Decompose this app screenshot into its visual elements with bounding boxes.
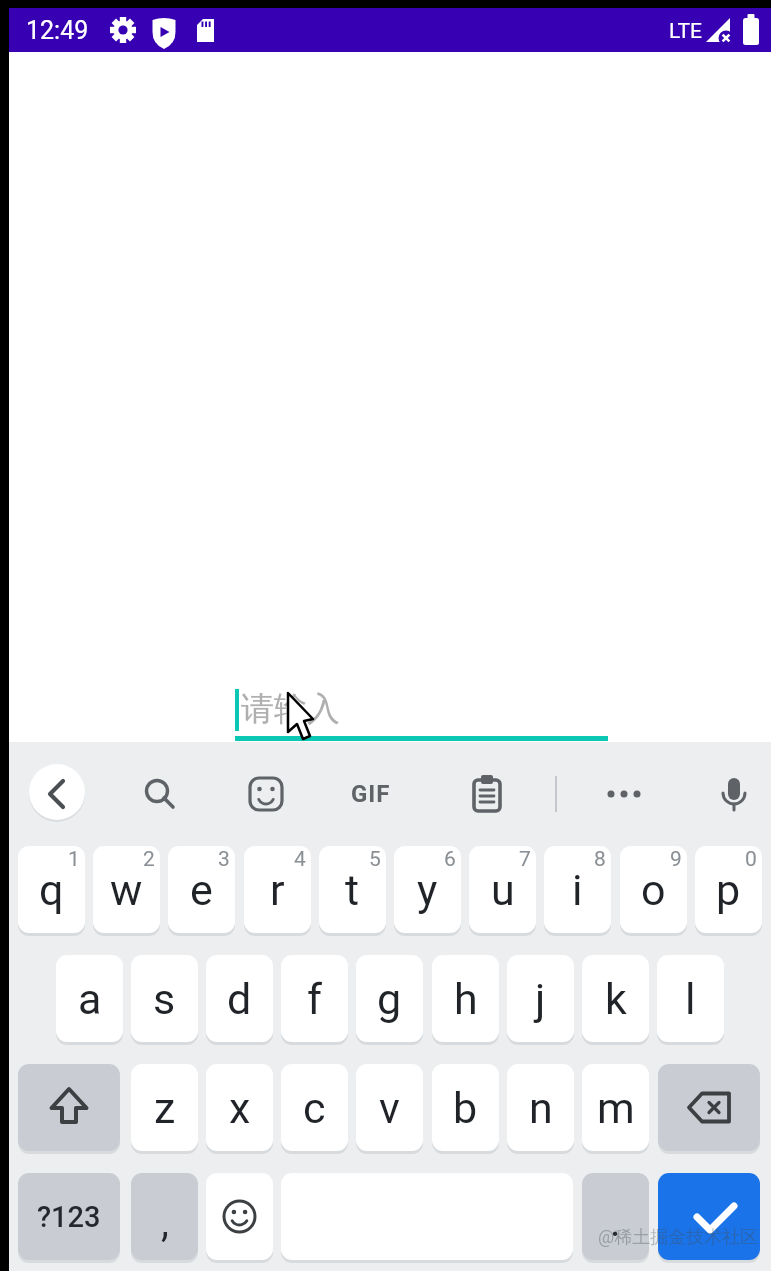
staticText: 12:49 [26,16,89,45]
button[interactable]: p [695,846,762,933]
staticText: e [190,865,213,915]
staticText: z [154,1083,176,1133]
button[interactable]: , [131,1173,198,1260]
button[interactable]: z [131,1064,198,1151]
button[interactable] [18,1064,120,1151]
staticText: v [379,1083,400,1133]
staticText: LTE [669,19,702,44]
button[interactable]: s [131,955,198,1042]
button[interactable]: . [582,1173,649,1260]
button[interactable]: e [168,846,235,933]
staticText: , [161,1199,169,1246]
button[interactable]: b [432,1064,499,1151]
staticText: h [454,974,478,1024]
staticText: 2 [143,847,155,872]
staticText: n [529,1083,553,1133]
staticText: b [453,1083,478,1133]
button[interactable]: w [93,846,160,933]
staticText: p [716,865,741,915]
button[interactable]: c [281,1064,348,1151]
staticText: 3 [218,847,230,872]
button[interactable]: l [657,955,724,1042]
button[interactable] [29,764,85,820]
button[interactable]: m [582,1064,649,1151]
staticText: s [153,974,176,1024]
button[interactable]: g [356,955,423,1042]
button[interactable] [658,1173,760,1260]
button[interactable]: d [206,955,273,1042]
button[interactable]: i [544,846,611,933]
button[interactable]: k [582,955,649,1042]
staticText: 9 [670,847,682,872]
staticText: x [229,1083,251,1133]
staticText: a [78,974,102,1024]
button[interactable]: h [432,955,499,1042]
staticText: u [491,865,515,915]
staticText: 请输入 [241,688,340,730]
button[interactable] [235,736,608,741]
staticText: 0 [745,847,757,872]
button[interactable]: q [18,846,85,933]
button[interactable]: f [281,955,348,1042]
staticText: d [227,974,252,1024]
staticText: 8 [594,847,606,872]
staticText: f [307,974,322,1024]
staticText: 6 [444,847,456,872]
button[interactable]: n [507,1064,574,1151]
button[interactable]: t [319,846,386,933]
staticText: ?123 [37,1200,101,1234]
staticText: 7 [519,847,531,872]
staticText: @稀土掘金技术社区 [598,1226,759,1249]
staticText: GIF [351,780,391,808]
button[interactable] [206,1173,273,1260]
button[interactable]: y [394,846,461,933]
staticText: k [605,974,627,1024]
staticText: r [270,865,285,915]
staticText: m [597,1083,635,1133]
staticText: l [685,974,696,1024]
staticText: i [572,865,583,915]
button[interactable]: ?123 [18,1173,120,1260]
button[interactable]: o [620,846,687,933]
staticText: w [110,865,143,915]
staticText: . [610,1199,621,1246]
staticText: g [377,974,402,1024]
button[interactable]: v [356,1064,423,1151]
staticText: o [641,865,666,915]
button[interactable]: x [206,1064,273,1151]
staticText: 5 [369,847,381,872]
staticText: y [417,865,438,915]
staticText: c [303,1083,326,1133]
button[interactable] [658,1064,760,1151]
staticText: 4 [294,847,306,872]
button[interactable]: j [507,955,574,1042]
staticText: 1 [68,847,80,872]
button[interactable]: u [469,846,536,933]
button[interactable]: a [56,955,123,1042]
staticText: q [39,865,64,915]
staticText: j [535,974,546,1024]
staticText: t [345,865,360,915]
button[interactable]: r [244,846,311,933]
